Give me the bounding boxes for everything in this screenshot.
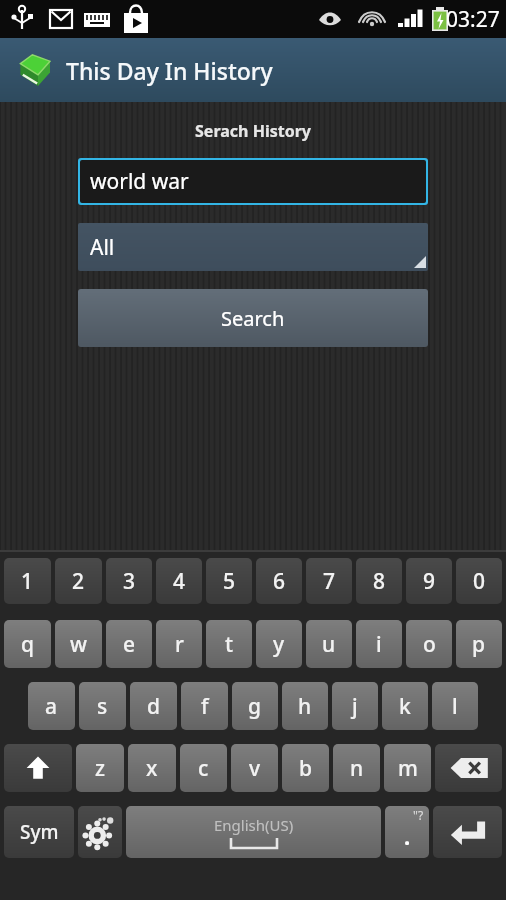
staticText: j [352, 692, 358, 721]
staticText: This Day In History [66, 55, 273, 86]
staticText: t [225, 630, 234, 659]
staticText: q [21, 630, 35, 659]
staticText: All [90, 233, 115, 262]
button[interactable]: 8 [356, 558, 402, 604]
button[interactable]: 7 [306, 558, 352, 604]
staticText: "? [413, 807, 424, 823]
button[interactable]: d [130, 682, 177, 730]
staticText: 7 [323, 567, 336, 596]
button[interactable]: 1 [4, 558, 51, 604]
staticText: x [146, 754, 158, 783]
button[interactable]: q [4, 620, 51, 668]
staticText: r [175, 630, 184, 659]
staticText: g [248, 692, 262, 721]
button[interactable]: n [333, 744, 380, 792]
staticText: 9 [423, 567, 436, 596]
button[interactable]: Keyboard settings [78, 806, 122, 858]
staticText: n [350, 754, 364, 783]
button[interactable]: g [232, 682, 278, 730]
staticText: 6 [273, 567, 286, 596]
button[interactable]: u [306, 620, 352, 668]
staticText: m [398, 754, 418, 783]
button[interactable]: h [282, 682, 328, 730]
button[interactable]: z [76, 744, 124, 792]
button[interactable]: s [79, 682, 126, 730]
staticText: Sym [20, 819, 59, 845]
button[interactable]: 6 [256, 558, 302, 604]
button[interactable]: i [356, 620, 402, 668]
button[interactable]: l [432, 682, 478, 730]
button[interactable]: 9 [406, 558, 452, 604]
staticText: English(US) [214, 815, 294, 835]
button[interactable]: y [256, 620, 302, 668]
button[interactable]: e [106, 620, 152, 668]
button[interactable]: 5 [206, 558, 252, 604]
button[interactable]: r [156, 620, 202, 668]
button[interactable]: Enter [433, 806, 502, 858]
button[interactable]: b [282, 744, 329, 792]
staticText: . [404, 821, 411, 851]
button[interactable]: k [382, 682, 428, 730]
button[interactable]: v [231, 744, 278, 792]
staticText: 1 [21, 567, 34, 596]
button[interactable]: t [206, 620, 252, 668]
staticText: world war [90, 167, 189, 196]
staticText: a [45, 692, 58, 721]
button[interactable]: Sym [4, 806, 74, 858]
button[interactable]: f [181, 682, 228, 730]
staticText: 03:27 [446, 5, 500, 34]
button[interactable]: o [406, 620, 452, 668]
button[interactable]: Delete [435, 744, 502, 792]
staticText: 0 [473, 567, 486, 596]
staticText: 5 [223, 567, 236, 596]
button[interactable]: Search [78, 289, 428, 347]
button[interactable]: x [128, 744, 176, 792]
button[interactable]: w [55, 620, 102, 668]
button[interactable]: 0 [456, 558, 502, 604]
staticText: s [97, 692, 108, 721]
button[interactable]: All [78, 223, 428, 271]
staticText: z [95, 754, 106, 783]
button[interactable]: p [456, 620, 502, 668]
staticText: e [123, 630, 136, 659]
staticText: b [299, 754, 313, 783]
button[interactable]: j [332, 682, 378, 730]
staticText: Serach History [0, 120, 506, 142]
staticText: p [472, 630, 486, 659]
staticText: w [70, 630, 87, 659]
staticText: 3 [123, 567, 136, 596]
button[interactable]: world war [80, 160, 426, 203]
staticText: c [198, 754, 209, 783]
button[interactable]: m [384, 744, 431, 792]
button[interactable]: Space [126, 806, 381, 858]
staticText: 8 [373, 567, 386, 596]
staticText: y [273, 630, 285, 659]
button[interactable]: 3 [106, 558, 152, 604]
staticText: f [201, 692, 209, 721]
staticText: i [376, 630, 382, 659]
staticText: k [399, 692, 411, 721]
staticText: v [249, 754, 261, 783]
staticText: 4 [173, 567, 186, 596]
button[interactable]: 4 [156, 558, 202, 604]
button[interactable]: c [180, 744, 227, 792]
button[interactable]: a [28, 682, 75, 730]
staticText: Search [221, 305, 285, 332]
button[interactable]: 2 [55, 558, 102, 604]
button[interactable]: Period [385, 806, 429, 858]
button[interactable]: Shift [4, 744, 72, 792]
staticText: o [423, 630, 436, 659]
staticText: u [322, 630, 336, 659]
staticText: l [452, 692, 458, 721]
staticText: h [298, 692, 312, 721]
staticText: d [147, 692, 161, 721]
staticText: 2 [72, 567, 85, 596]
